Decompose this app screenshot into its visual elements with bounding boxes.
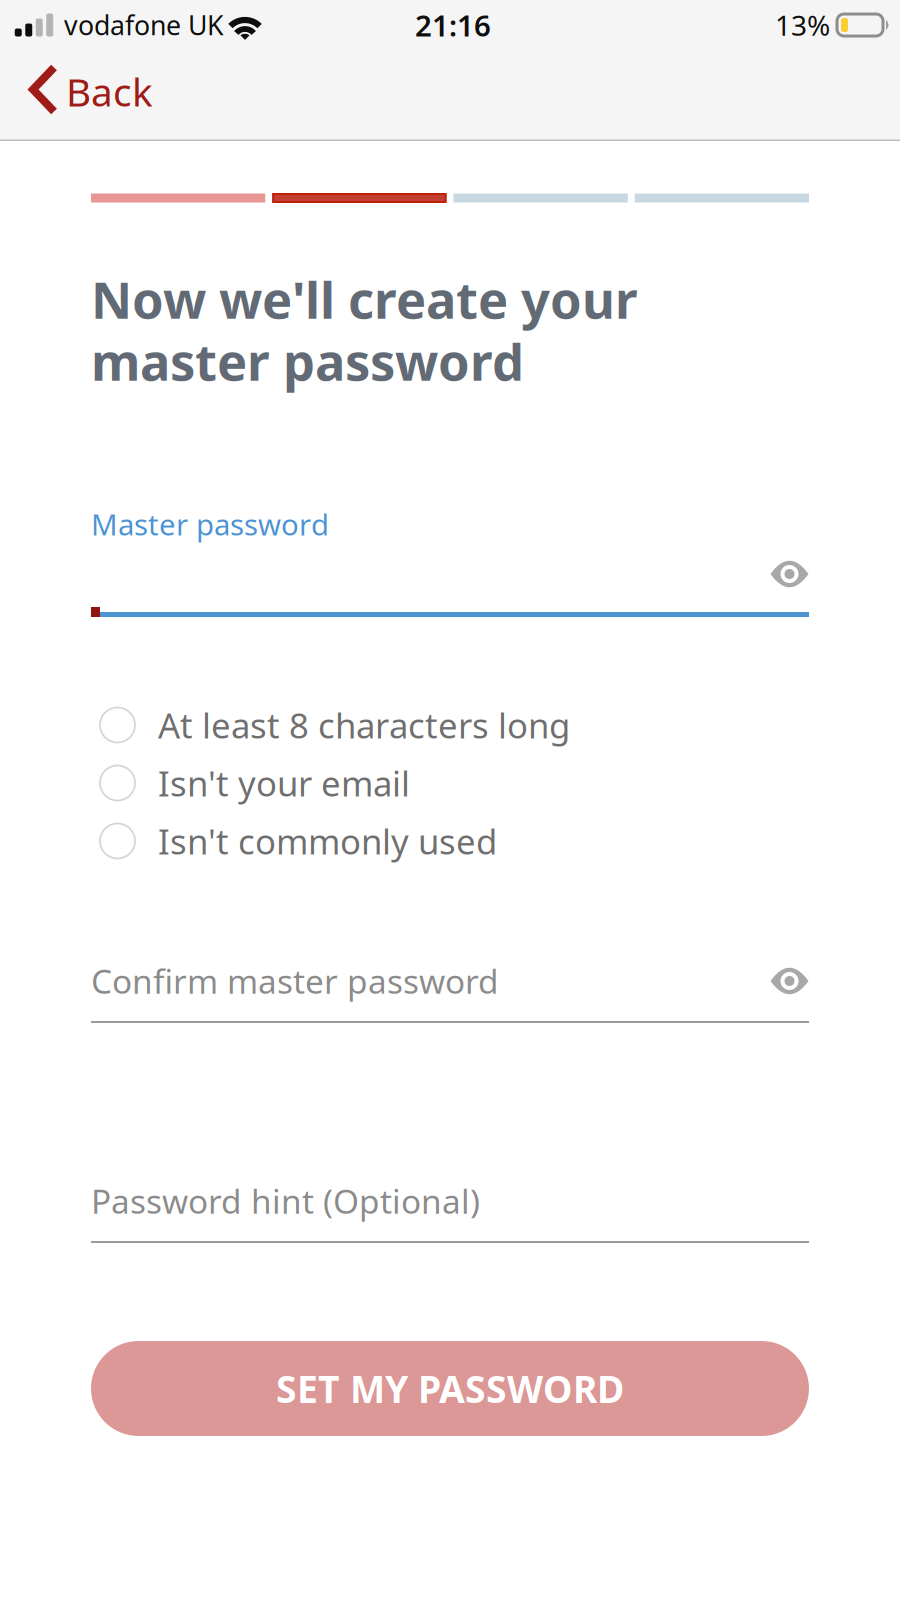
staticText: Back xyxy=(66,66,153,117)
button[interactable]: Show master password xyxy=(752,552,809,619)
staticText: Master password xyxy=(91,504,329,543)
staticText: 13% xyxy=(775,6,830,44)
button[interactable]: Show confirm password xyxy=(752,959,809,1003)
staticText: At least 8 characters long xyxy=(158,702,570,748)
button[interactable]: Confirm master password xyxy=(91,955,809,1025)
staticText: Isn't your email xyxy=(158,760,410,806)
button[interactable]: Back xyxy=(0,50,177,141)
button[interactable]: SET MY PASSWORD xyxy=(91,1341,809,1436)
staticText: Now we'll create your xyxy=(91,265,638,333)
staticText: vodafone UK xyxy=(64,7,224,43)
staticText: Isn't commonly used xyxy=(158,818,497,864)
staticText: 21:16 xyxy=(415,5,491,44)
staticText: master password xyxy=(91,327,524,395)
staticText: Confirm master password xyxy=(91,959,499,1003)
button[interactable]: Password hint (Optional) xyxy=(91,1175,809,1245)
staticText: SET MY PASSWORD xyxy=(276,1364,624,1413)
staticText: Password hint (Optional) xyxy=(91,1179,480,1223)
